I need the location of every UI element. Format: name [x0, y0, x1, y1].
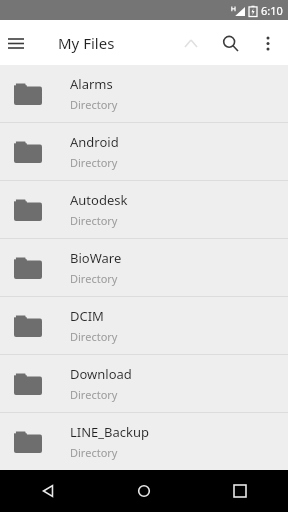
staticText: Directory	[70, 387, 118, 402]
button[interactable]: Alarms	[0, 65, 288, 122]
staticText: DCIM	[70, 307, 104, 325]
staticText: Android	[70, 133, 119, 151]
button[interactable]: Recent apps	[192, 470, 288, 512]
staticText: LINE_Backup	[70, 423, 150, 441]
button[interactable]: BioWare	[0, 239, 288, 296]
staticText: Directory	[70, 445, 118, 460]
button[interactable]: Download	[0, 355, 288, 412]
staticText: BioWare	[70, 249, 122, 267]
button[interactable]: Autodesk	[0, 181, 288, 238]
button[interactable]: Android	[0, 123, 288, 180]
button[interactable]: Open navigation drawer	[0, 21, 38, 65]
button[interactable]: DCIM	[0, 297, 288, 354]
button[interactable]: Collapse	[172, 24, 210, 62]
button[interactable]: Home	[96, 470, 192, 512]
staticText: Directory	[70, 271, 118, 286]
button[interactable]: More options	[250, 25, 286, 61]
button[interactable]: Search	[210, 23, 250, 63]
staticText: Directory	[70, 329, 118, 344]
staticText: Alarms	[70, 75, 113, 93]
staticText: Directory	[70, 97, 118, 112]
button[interactable]: Back	[0, 470, 96, 512]
staticText: Download	[70, 365, 132, 383]
staticText: Autodesk	[70, 191, 128, 209]
staticText: 6:10	[261, 3, 283, 18]
staticText: Directory	[70, 213, 118, 228]
button[interactable]: LINE_Backup	[0, 413, 288, 470]
staticText: My Files	[58, 33, 115, 53]
staticText: Directory	[70, 155, 118, 170]
